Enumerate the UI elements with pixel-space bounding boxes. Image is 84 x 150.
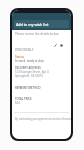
button[interactable]: Edit [53,43,57,47]
staticText: Please review the details below [15,32,59,36]
staticText: $24 [15,101,20,105]
staticText: In stock ready to ship [15,59,44,63]
staticText: Status [15,55,25,59]
staticText: PAYMENT METHOD [15,86,41,90]
staticText: Add to my wish list [16,22,49,27]
staticText: TOTAL PRICE [15,97,32,101]
staticText: By continuing you agree to our terms of … [15,117,71,121]
staticText: DELIVERY ADDRESS [15,66,41,70]
staticText: 123 Example Street, Apt 4 [15,70,49,74]
button[interactable]: Add to my wish list [14,20,69,28]
staticText: ITEM DETAILS [15,48,34,52]
button[interactable]: More options [59,43,63,47]
staticText: Springfield, CA 90210 [15,74,44,78]
